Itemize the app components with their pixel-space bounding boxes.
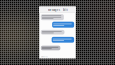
staticText: Delivered [41, 56, 48, 57]
staticText: Edit [63, 8, 68, 12]
staticText: Messages [48, 8, 60, 12]
button[interactable]: Edit [62, 8, 68, 12]
